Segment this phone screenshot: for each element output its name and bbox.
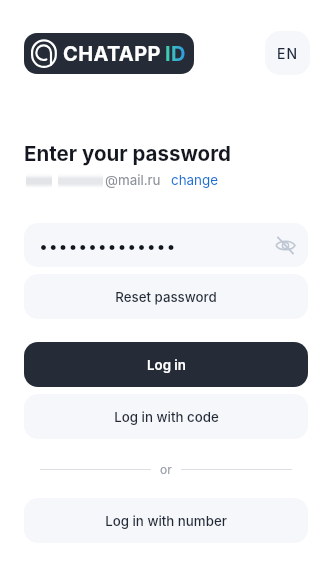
staticText: Reset password <box>115 289 217 305</box>
button[interactable]: •••••••••••••• <box>24 223 308 267</box>
staticText: Log in with number <box>105 513 227 529</box>
button[interactable]: Log in with number <box>24 498 308 543</box>
button[interactable]: Reset password <box>24 274 308 319</box>
staticText: or <box>160 462 172 476</box>
other: Show password <box>275 235 296 256</box>
staticText: Enter your password <box>24 141 231 166</box>
staticText: Log in <box>147 357 186 373</box>
staticText: change <box>171 172 219 188</box>
button[interactable]: Log in with code <box>24 394 308 439</box>
button[interactable]: EN <box>265 31 310 75</box>
button[interactable]: Log in <box>24 342 308 387</box>
other: ChatApp ID logo <box>31 39 57 68</box>
button[interactable]: ChatApp ID logo <box>24 33 194 74</box>
staticText: @mail.ru <box>105 172 161 188</box>
staticText: •••••••••••••• <box>39 236 177 255</box>
staticText: CHATAPP <box>63 42 161 66</box>
button[interactable]: change <box>171 172 219 188</box>
staticText: ID <box>165 42 186 66</box>
staticText: EN <box>277 45 299 62</box>
staticText: Log in with code <box>114 409 219 425</box>
